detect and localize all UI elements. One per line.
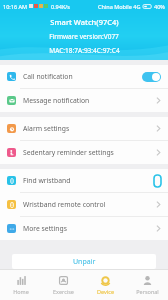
staticText: Unpair <box>73 257 96 267</box>
staticText: Alarm settings <box>23 124 70 133</box>
button[interactable]: Exercise <box>42 272 84 298</box>
staticText: 10:16 AM <box>3 3 27 10</box>
button[interactable]: Home <box>0 272 42 298</box>
button[interactable]: Wristband remote control <box>0 193 168 216</box>
staticText: Message notification <box>23 96 90 105</box>
button[interactable]: More settings <box>0 217 168 240</box>
staticText: Call notification <box>23 72 73 81</box>
button[interactable]: Personal <box>126 272 168 298</box>
staticText: Exercise <box>53 288 74 295</box>
staticText: 0.94K/s <box>51 3 70 10</box>
staticText: MAC:18:7A:93:4C:97:C4 <box>49 46 120 55</box>
button[interactable]: Find wristband <box>0 169 168 192</box>
button[interactable]: Sedentary reminder settings <box>0 141 168 164</box>
staticText: China Mobile 4G <box>98 3 141 10</box>
button[interactable]: Device <box>84 272 126 298</box>
button[interactable]: Unpair <box>12 254 156 269</box>
staticText: More settings <box>23 224 67 233</box>
staticText: Personal <box>136 288 159 295</box>
staticText: Home <box>13 288 29 295</box>
button[interactable]: Call notification <box>0 65 168 88</box>
staticText: Device <box>97 288 114 295</box>
button[interactable]: Call notification toggle <box>142 72 161 82</box>
staticText: Find wristband <box>23 176 71 185</box>
staticText: Wristband remote control <box>23 200 106 209</box>
button[interactable]: Message notification <box>0 89 168 112</box>
button[interactable]: Alarm settings <box>0 117 168 140</box>
staticText: 40% <box>154 3 165 10</box>
staticText: Smart Watch(97C4) <box>50 17 119 27</box>
staticText: Firmware version:V077 <box>49 32 119 41</box>
staticText: Sedentary reminder settings <box>23 148 114 157</box>
